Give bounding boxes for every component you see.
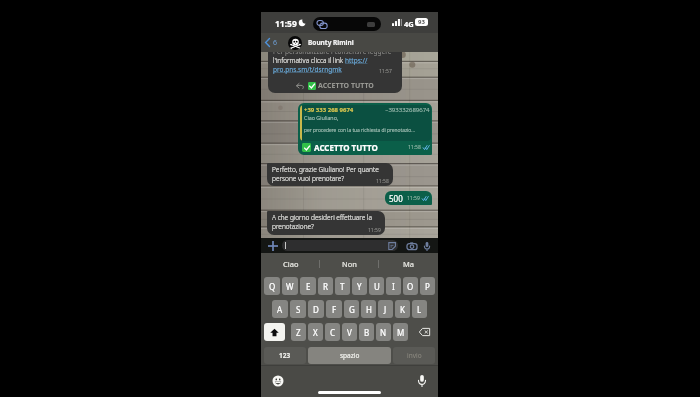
staticText: X [313,327,318,338]
staticText: L [417,304,422,315]
button[interactable]: Backspace [414,323,435,341]
button[interactable]: S [290,300,306,318]
staticText: T [340,281,345,292]
staticText: 500 [389,193,403,204]
staticText: Non [342,259,357,269]
staticText: A [277,304,283,315]
button[interactable]: Camera [406,240,418,252]
button[interactable]: Ciao [261,253,320,274]
staticText: prenotazione? [272,222,314,231]
button[interactable]: 500 [385,191,432,205]
button[interactable]: K [395,300,410,318]
staticText: Z [296,327,301,338]
staticText: pro.pns.sm/t/dsrngmk [273,65,342,74]
button[interactable]: A [272,300,288,318]
staticText: persone vuoi prenotare? [272,174,345,183]
staticText: A che giorno desideri effettuare la [272,213,373,222]
staticText: S [296,304,301,315]
button[interactable]: R [318,277,333,295]
staticText: Q [269,281,276,292]
button[interactable]: Non [320,253,379,274]
button[interactable]: Ma [379,253,438,274]
staticText: D [313,304,319,315]
staticText: H [366,304,372,315]
staticText: U [374,281,380,292]
staticText: 11:58 [376,178,389,185]
staticText: 123 [279,351,291,360]
staticText: invio [407,351,422,360]
button[interactable]: X [308,323,323,341]
button[interactable]: Per personalizzare i consensi e leggere [268,47,402,93]
button[interactable]: V [342,323,357,341]
staticText: M [397,327,405,338]
staticText: 11:59 [275,18,297,30]
staticText: 93 [418,18,425,26]
staticText: K [400,304,405,315]
staticText: ACCETTO TUTTO [314,142,378,153]
button[interactable]: C [325,323,340,341]
button[interactable]: Z [291,323,306,341]
button[interactable]: Dictation [415,374,428,387]
staticText: Bounty Rimini [308,38,354,47]
staticText: 11:59 [368,227,381,234]
staticText: R [323,281,328,292]
staticText: ACCETTO TUTTO [318,81,374,91]
staticText: 11:57 [379,68,392,75]
button[interactable]: spazio [308,347,391,364]
button[interactable]: +39 333 268 9674 [298,103,432,155]
staticText: J [384,304,387,315]
staticText: N [380,327,387,338]
staticText: Perfetto, grazie Giuliano! Per quante [272,165,379,174]
staticText: O [407,281,414,292]
staticText: B [364,327,370,338]
button[interactable]: U [369,277,384,295]
button[interactable]: J [378,300,393,318]
staticText: G [349,304,355,315]
button[interactable]: A che giorno desideri effettuare la [267,211,385,235]
button[interactable]: I [386,277,401,295]
button[interactable]: G [344,300,359,318]
button[interactable]: L [412,300,427,318]
button[interactable]: Voice message [421,240,433,252]
button[interactable]: D [308,300,324,318]
button[interactable]: B [359,323,374,341]
staticText: 4G [404,19,414,29]
button[interactable]: P [420,277,435,295]
button[interactable]: T [335,277,350,295]
staticText: F [332,304,337,315]
staticText: I [392,281,395,292]
button[interactable]: Q [264,277,280,295]
button[interactable]: invio [393,347,435,364]
button[interactable]: E [300,277,316,295]
button[interactable]: Perfetto, grazie Giuliano! Per quante [267,163,393,186]
staticText: Ciao Giuliano, [304,114,339,121]
staticText: per procedere con la tua richiesta di pr… [304,127,415,134]
button[interactable]: N [376,323,391,341]
staticText: 11:59 [407,195,420,202]
staticText: 6 [273,38,278,48]
staticText: https:// [345,56,368,65]
button[interactable]: O [403,277,418,295]
staticText: Ciao [283,259,299,269]
button[interactable]: Bounty Rimini profile [288,36,302,50]
button[interactable]: W [282,277,298,295]
button[interactable]: 123 [264,347,306,364]
button[interactable]: Attach [267,240,279,252]
staticText: Ma [403,259,415,269]
staticText: Per personalizzare i consensi e leggere [273,47,392,56]
staticText: spazio [340,351,360,360]
button[interactable] [282,240,398,251]
button[interactable]: M [393,323,408,341]
button[interactable]: Y [352,277,367,295]
button[interactable]: Emoji keyboard [272,375,284,387]
button[interactable]: F [326,300,342,318]
staticText: Y [357,281,362,292]
staticText: P [425,281,430,292]
button[interactable]: Back, 6 unread [265,33,285,52]
button[interactable]: H [361,300,376,318]
button[interactable]: Shift [264,323,285,341]
staticText: V [347,327,352,338]
staticText: C [330,327,336,338]
staticText: ~393332689674 [385,106,430,114]
staticText: E [306,281,311,292]
